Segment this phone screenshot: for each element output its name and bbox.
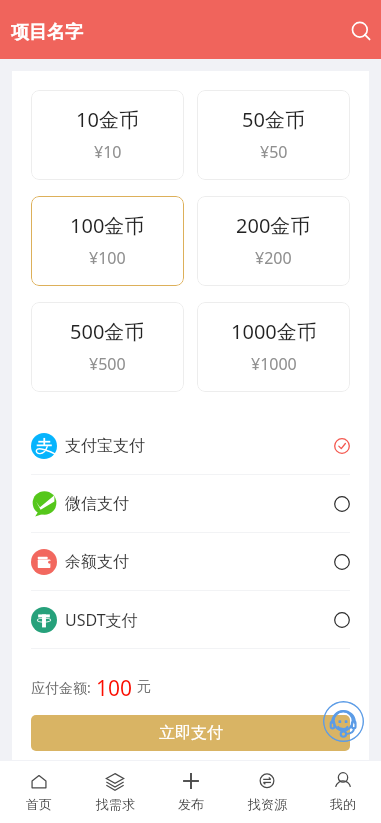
- staticText: USDT支付: [65, 609, 138, 631]
- button[interactable]: 找需求: [77, 761, 153, 823]
- staticText: ¥50: [260, 141, 288, 163]
- staticText: 我的: [330, 796, 356, 812]
- staticText: 立即支付: [159, 723, 223, 743]
- staticText: 10金币: [76, 106, 139, 133]
- staticText: ¥1000: [251, 353, 297, 375]
- staticText: 微信支付: [65, 494, 129, 514]
- staticText: 首页: [26, 796, 52, 812]
- staticText: 50金币: [242, 106, 305, 133]
- staticText: 支付宝支付: [65, 436, 145, 456]
- staticText: 余额支付: [65, 552, 129, 572]
- button[interactable]: 发布: [153, 761, 229, 823]
- staticText: ¥200: [255, 247, 292, 269]
- button[interactable]: 支付宝支付: [31, 417, 350, 474]
- staticText: 发布: [178, 796, 204, 812]
- button[interactable]: 200金币: [197, 196, 350, 286]
- staticText: 应付金额:: [31, 678, 91, 697]
- button[interactable]: 500金币: [31, 302, 184, 392]
- button[interactable]: 100金币: [31, 196, 184, 286]
- button[interactable]: 首页: [0, 761, 77, 823]
- staticText: ¥100: [89, 247, 126, 269]
- staticText: 找需求: [96, 796, 135, 812]
- staticText: ¥10: [94, 141, 122, 163]
- button[interactable]: USDT支付: [31, 591, 350, 648]
- staticText: 200金币: [236, 212, 311, 239]
- staticText: 项目名字: [11, 21, 83, 44]
- button[interactable]: 立即支付: [31, 715, 350, 751]
- button[interactable]: 10金币: [31, 90, 184, 180]
- staticText: 100: [96, 674, 133, 700]
- staticText: ¥500: [89, 353, 126, 375]
- staticText: 找资源: [248, 796, 287, 812]
- staticText: 1000金币: [231, 318, 317, 345]
- button[interactable]: 我的: [305, 761, 381, 823]
- staticText: 100金币: [70, 212, 145, 239]
- staticText: 元: [137, 678, 151, 696]
- button[interactable]: Search: [335, 7, 381, 53]
- button[interactable]: 找资源: [229, 761, 305, 823]
- button[interactable]: 微信支付: [31, 475, 350, 532]
- button[interactable]: 1000金币: [197, 302, 350, 392]
- button[interactable]: 余额支付: [31, 533, 350, 590]
- button[interactable]: 50金币: [197, 90, 350, 180]
- button[interactable]: Customer service: [323, 701, 364, 742]
- staticText: 500金币: [70, 318, 145, 345]
